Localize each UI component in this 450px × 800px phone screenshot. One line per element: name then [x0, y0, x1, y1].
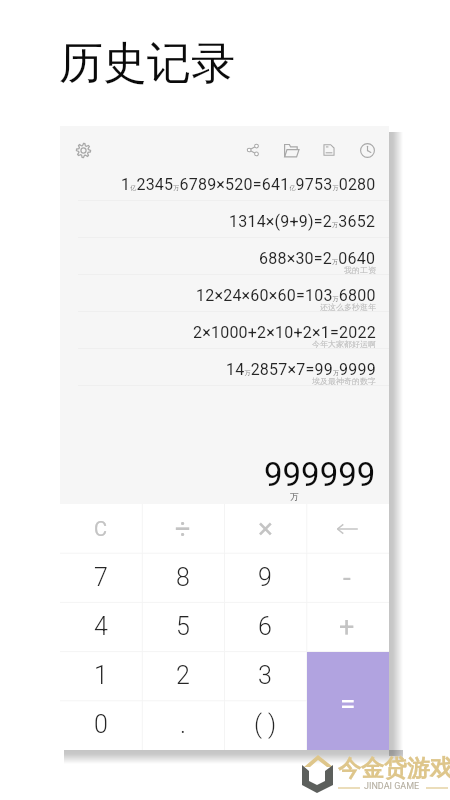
staticText: -: [343, 561, 351, 594]
staticText: 2: [176, 661, 190, 690]
button[interactable]: 4: [60, 602, 142, 651]
staticText: 埃及最神奇的数字: [312, 376, 376, 386]
button[interactable]: Save: [316, 137, 342, 163]
button[interactable]: 3: [224, 651, 306, 700]
button[interactable]: 1: [60, 651, 142, 700]
staticText: 我的工资: [344, 265, 376, 275]
staticText: .: [180, 710, 186, 739]
staticText: 1: [94, 661, 108, 690]
staticText: ×: [258, 512, 273, 545]
staticText: =: [340, 687, 356, 720]
staticText: ( ): [254, 710, 277, 739]
staticText: 1314×(9+9)=2万3652: [229, 212, 376, 231]
button[interactable]: ( ): [224, 700, 306, 749]
staticText: 1亿2345万6789×520=641亿9753万0280: [121, 175, 376, 194]
button[interactable]: Settings: [71, 138, 95, 162]
button[interactable]: 1314×(9+9)=2万3652: [60, 201, 389, 238]
button[interactable]: Backspace: [306, 504, 388, 553]
button[interactable]: 9: [224, 553, 306, 602]
button[interactable]: 12×24×60×60=103万6800: [60, 275, 389, 312]
staticText: C: [94, 517, 108, 540]
button[interactable]: 5: [142, 602, 224, 651]
button[interactable]: 14万2857×7=99万9999: [60, 349, 389, 386]
staticText: 2×1000+2×10+2×1=2022: [193, 323, 376, 342]
button[interactable]: 6: [224, 602, 306, 651]
button[interactable]: Open folder: [278, 137, 304, 163]
button[interactable]: Share: [240, 137, 266, 163]
button[interactable]: 688×30=2万0640: [60, 238, 389, 275]
staticText: 今年大家都好运啊: [312, 339, 376, 349]
button[interactable]: +: [306, 602, 388, 651]
staticText: 4: [94, 612, 108, 641]
staticText: ÷: [175, 513, 191, 545]
button[interactable]: 1亿2345万6789×520=641亿9753万0280: [60, 164, 389, 201]
staticText: 历史记录: [59, 36, 235, 91]
staticText: 999999: [264, 455, 376, 494]
staticText: 今金贷游戏: [338, 754, 450, 783]
other: Backspace: [337, 524, 358, 534]
button[interactable]: 2: [142, 651, 224, 700]
button[interactable]: 7: [60, 553, 142, 602]
button[interactable]: ×: [224, 504, 306, 553]
staticText: 万: [290, 491, 299, 502]
staticText: 14万2857×7=99万9999: [226, 360, 376, 379]
staticText: 0: [94, 710, 108, 739]
staticText: 9: [258, 563, 272, 592]
staticText: 5: [176, 612, 190, 641]
button[interactable]: C: [60, 504, 142, 553]
staticText: 688×30=2万0640: [259, 249, 376, 268]
staticText: 7: [94, 563, 108, 592]
staticText: 还这么多秒逛年: [320, 302, 376, 312]
button[interactable]: 8: [142, 553, 224, 602]
staticText: 12×24×60×60=103万6800: [196, 286, 376, 305]
staticText: JINDAI GAME: [364, 781, 420, 792]
button[interactable]: History: [354, 137, 380, 163]
button[interactable]: ÷: [142, 504, 224, 553]
button[interactable]: 2×1000+2×10+2×1=2022: [60, 312, 389, 349]
button[interactable]: 0: [60, 700, 142, 749]
staticText: 6: [258, 612, 272, 641]
staticText: 3: [258, 661, 272, 690]
button[interactable]: -: [306, 553, 388, 602]
button[interactable]: .: [142, 700, 224, 749]
button[interactable]: =: [307, 652, 389, 750]
staticText: +: [339, 611, 355, 643]
staticText: 8: [176, 563, 190, 592]
